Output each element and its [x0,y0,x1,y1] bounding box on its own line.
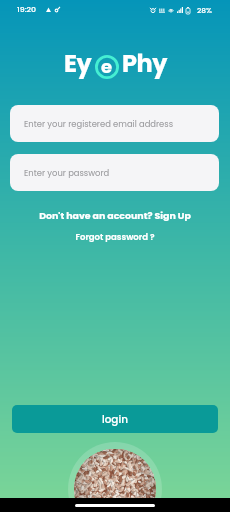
staticText: Forgot password ? [0,231,230,243]
button[interactable]: Enter your registered email address [10,105,219,142]
staticText: login [102,412,128,427]
button[interactable]: login [12,405,218,433]
staticText: Don't have an account? Sign Up [0,209,230,222]
staticText: Ey [64,47,92,81]
staticText: Phy [122,47,167,81]
staticText: 19:20 [17,4,37,15]
staticText: e [101,54,113,78]
staticText: 28% [197,5,213,15]
button[interactable]: Forgot password ? [0,231,230,243]
button[interactable]: Don't have an account? Sign Up [0,209,230,222]
staticText: Enter your password [24,167,110,179]
button[interactable]: Enter your password [10,154,219,191]
staticText: Enter your registered email address [24,118,174,130]
